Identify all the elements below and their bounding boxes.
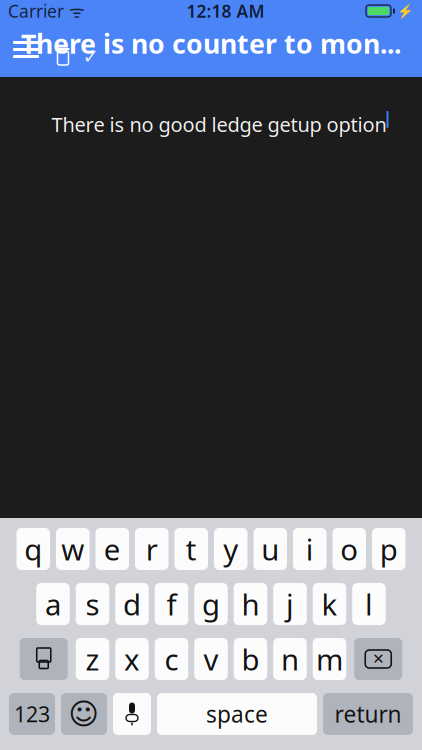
- staticText: q: [24, 529, 42, 568]
- button[interactable]: Delete note: [48, 22, 78, 76]
- staticText: x: [124, 639, 140, 678]
- staticText: h: [241, 584, 259, 623]
- staticText: l: [365, 584, 373, 623]
- staticText: e: [104, 529, 121, 568]
- staticText: space: [206, 699, 268, 729]
- staticText: ᯤ: [64, 0, 85, 22]
- button[interactable]: n: [273, 638, 307, 680]
- button[interactable]: f: [155, 583, 188, 625]
- staticText: z: [85, 639, 99, 678]
- staticText: n: [281, 639, 299, 678]
- button[interactable]: h: [234, 583, 267, 625]
- button[interactable]: Dictation: [113, 693, 151, 735]
- staticText: o: [340, 529, 358, 568]
- button[interactable]: Shift: [20, 638, 68, 680]
- button[interactable]: Save note: [78, 22, 104, 76]
- button[interactable]: j: [273, 583, 307, 625]
- staticText: m: [316, 639, 343, 678]
- staticText: y: [223, 529, 238, 568]
- staticText: g: [202, 584, 220, 623]
- button[interactable]: e: [95, 528, 129, 570]
- staticText: c: [164, 639, 178, 678]
- staticText: p: [380, 529, 398, 568]
- button[interactable]: o: [332, 528, 366, 570]
- button[interactable]: 123: [9, 693, 55, 735]
- staticText: s: [85, 584, 99, 623]
- button[interactable]: y: [214, 528, 247, 570]
- button[interactable]: k: [313, 583, 346, 625]
- staticText: return: [334, 699, 401, 729]
- button[interactable]: z: [76, 638, 109, 680]
- staticText: ✓: [82, 45, 99, 68]
- button[interactable]: p: [372, 528, 405, 570]
- staticText: t: [186, 529, 197, 568]
- button[interactable]: g: [194, 583, 228, 625]
- staticText: w: [61, 529, 84, 568]
- staticText: b: [241, 639, 259, 678]
- button[interactable]: m: [313, 638, 346, 680]
- button[interactable]: b: [234, 638, 267, 680]
- staticText: r: [146, 529, 158, 568]
- button[interactable]: i: [293, 528, 326, 570]
- staticText: d: [123, 584, 141, 623]
- button[interactable]: v: [194, 638, 228, 680]
- button[interactable]: l: [352, 583, 386, 625]
- staticText: a: [45, 584, 61, 623]
- button[interactable]: c: [155, 638, 188, 680]
- button[interactable]: r: [135, 528, 168, 570]
- button[interactable]: Emoji: [61, 693, 107, 735]
- button[interactable]: t: [174, 528, 208, 570]
- button[interactable]: return: [323, 693, 413, 735]
- staticText: k: [321, 584, 337, 623]
- staticText: i: [306, 529, 314, 568]
- button[interactable]: a: [36, 583, 70, 625]
- button[interactable]: x: [115, 638, 149, 680]
- staticText: u: [261, 529, 279, 568]
- button[interactable]: Delete: [354, 638, 402, 680]
- staticText: f: [166, 584, 176, 623]
- staticText: v: [203, 639, 218, 678]
- button[interactable]: q: [16, 528, 50, 570]
- button[interactable]: u: [253, 528, 287, 570]
- staticText: 12:18 AM: [186, 0, 264, 22]
- staticText: j: [286, 584, 294, 623]
- staticText: There is no good ledge getup option: [51, 111, 386, 138]
- button[interactable]: w: [56, 528, 89, 570]
- staticText: ☺: [68, 697, 99, 731]
- button[interactable]: Menu: [4, 29, 48, 69]
- staticText: Carrier: [8, 0, 64, 22]
- staticText: ✕: [372, 651, 384, 667]
- staticText: There is no counter to mon...: [21, 26, 401, 61]
- button[interactable]: s: [76, 583, 109, 625]
- staticText: 123: [14, 700, 50, 728]
- staticText: ⚡: [397, 3, 414, 19]
- button[interactable]: space: [157, 693, 317, 735]
- button[interactable]: d: [115, 583, 149, 625]
